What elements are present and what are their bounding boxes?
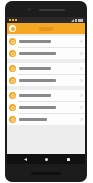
button[interactable]: Back (21, 155, 29, 163)
button[interactable] (7, 75, 85, 86)
button[interactable] (7, 102, 85, 113)
button[interactable] (7, 114, 85, 125)
button[interactable]: Home (42, 155, 50, 163)
button[interactable] (7, 90, 85, 101)
button[interactable]: Recents (64, 155, 72, 163)
button[interactable] (7, 36, 85, 47)
button[interactable] (7, 48, 85, 59)
button[interactable]: Menu (9, 25, 16, 32)
button[interactable] (7, 63, 85, 74)
